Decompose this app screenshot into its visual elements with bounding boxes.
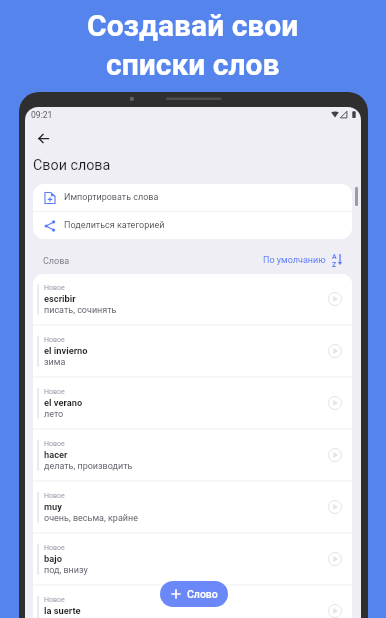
staticText: Новое <box>44 596 65 604</box>
button[interactable]: Новое <box>33 430 352 480</box>
staticText: списки слов <box>106 47 280 82</box>
button[interactable]: Новое <box>33 534 352 584</box>
button[interactable]: Play <box>322 338 348 364</box>
staticText: Z <box>332 261 337 267</box>
staticText: лето <box>44 409 64 420</box>
staticText: Свои слова <box>33 157 111 174</box>
button[interactable]: Импортировать слова <box>33 184 352 211</box>
staticText: Новое <box>44 336 65 344</box>
staticText: зима <box>44 357 66 368</box>
staticText: Импортировать слова <box>64 192 159 203</box>
button[interactable]: Новое <box>33 586 352 618</box>
staticText: Новое <box>44 440 65 448</box>
staticText: писать, сочинять <box>44 305 117 316</box>
button[interactable]: Новое <box>33 326 352 376</box>
button[interactable]: Back <box>31 126 56 151</box>
staticText: Новое <box>44 388 65 396</box>
button[interactable]: Play <box>322 442 348 468</box>
button[interactable]: Play <box>322 390 348 416</box>
staticText: la suerte <box>44 605 81 616</box>
button[interactable]: Play <box>322 286 348 312</box>
staticText: под, внизу <box>44 565 88 576</box>
staticText: muy <box>44 501 62 512</box>
staticText: делать, производить <box>44 461 133 472</box>
staticText: Слова <box>43 256 70 267</box>
staticText: bajo <box>44 553 62 564</box>
button[interactable]: Новое <box>33 378 352 428</box>
staticText: escribir <box>44 293 76 304</box>
staticText: Создавай свои <box>87 8 299 43</box>
staticText: очень, весьма, крайне <box>44 513 138 524</box>
staticText: Новое <box>44 492 65 500</box>
staticText: Новое <box>44 544 65 552</box>
staticText: hacer <box>44 449 68 460</box>
staticText: el invierno <box>44 345 88 356</box>
staticText: По умолчанию <box>263 255 326 266</box>
staticText: A <box>332 253 337 261</box>
staticText: Слово <box>187 588 218 600</box>
button[interactable]: Play <box>322 546 348 572</box>
button[interactable]: Новое <box>33 482 352 532</box>
staticText: Поделиться категорией <box>64 220 165 231</box>
staticText: Новое <box>44 284 65 292</box>
staticText: el verano <box>44 397 83 408</box>
button[interactable]: По умолчанию <box>263 252 342 268</box>
button[interactable]: Play <box>322 494 348 520</box>
staticText: 09:21 <box>31 110 53 120</box>
button[interactable]: Слово <box>160 581 228 607</box>
button[interactable]: Новое <box>33 274 352 324</box>
button[interactable]: Поделиться категорией <box>33 212 352 239</box>
button[interactable]: Play <box>322 598 348 618</box>
